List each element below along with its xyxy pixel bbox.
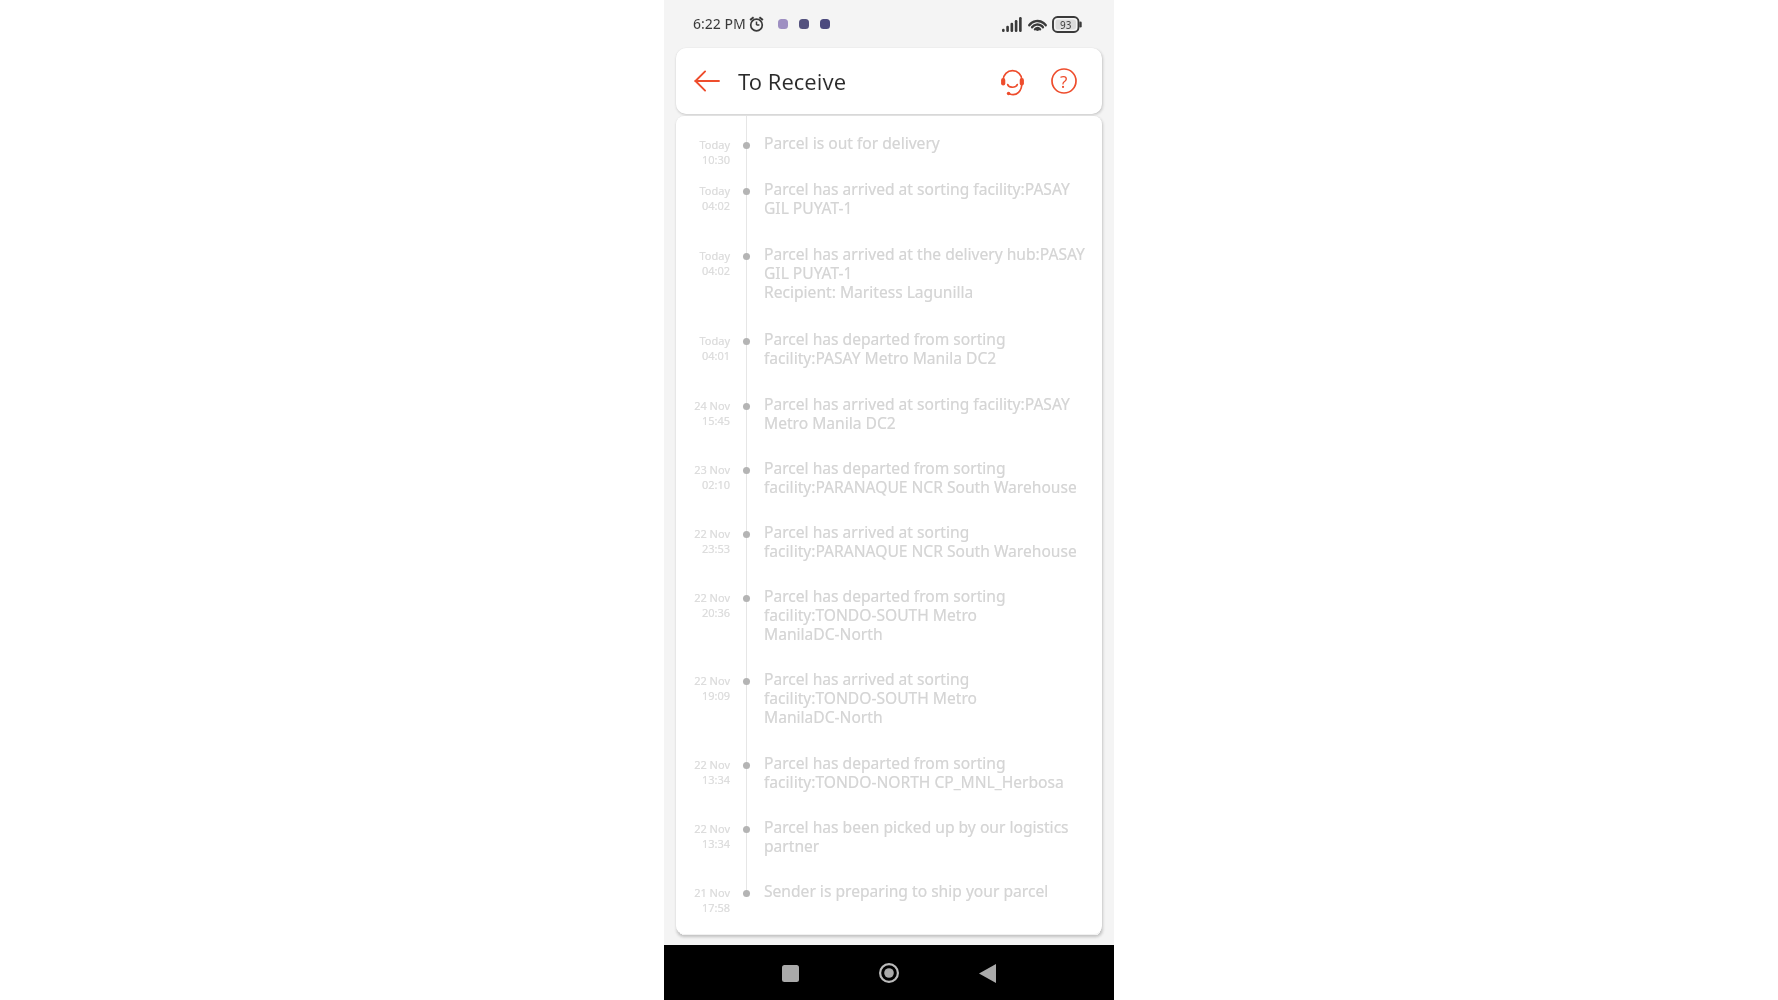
button[interactable]: Customer support [996, 65, 1028, 97]
button[interactable]: Back [965, 951, 1009, 995]
button[interactable]: 22 Nov [676, 673, 1102, 756]
button[interactable]: 23 Nov [676, 462, 1102, 526]
button[interactable]: Recents [768, 951, 812, 995]
staticText: 19:09 [701, 688, 730, 703]
button[interactable]: 24 Nov [676, 397, 1102, 462]
staticText: 04:02 [701, 263, 730, 278]
button[interactable]: 22 Nov [676, 821, 1102, 885]
staticText: Today [699, 183, 730, 198]
staticText: 13:34 [701, 772, 730, 787]
button[interactable]: 22 Nov [676, 590, 1102, 673]
staticText: 23:53 [701, 541, 730, 556]
staticText: 22 Nov [694, 526, 730, 541]
staticText: Parcel has arrived at sorting facility:P… [764, 180, 1070, 218]
staticText: 02:10 [701, 477, 730, 492]
button[interactable]: Help [1048, 65, 1080, 97]
staticText: 22 Nov [694, 821, 730, 836]
staticText: Parcel has arrived at the delivery hub:P… [764, 245, 1085, 302]
staticText: Parcel has departed from sorting facilit… [764, 587, 1006, 644]
staticText: Parcel has departed from sorting facilit… [764, 459, 1077, 497]
staticText: Today [699, 333, 730, 348]
staticText: Parcel has departed from sorting facilit… [764, 754, 1064, 792]
button[interactable]: Back [689, 63, 725, 99]
staticText: 24 Nov [694, 398, 730, 413]
staticText: 10:30 [701, 152, 730, 167]
button[interactable]: 21 Nov [676, 885, 1102, 930]
staticText: 20:36 [701, 605, 730, 620]
staticText: ? [1060, 70, 1068, 93]
staticText: 22 Nov [694, 590, 730, 605]
button[interactable]: Today [676, 247, 1102, 331]
staticText: 6:22 PM [693, 14, 746, 33]
staticText: 04:01 [701, 348, 730, 363]
button[interactable]: Today [676, 182, 1102, 247]
button[interactable]: 22 Nov [676, 756, 1102, 821]
staticText: Parcel is out for delivery [764, 134, 940, 153]
staticText: 04:02 [701, 198, 730, 213]
staticText: To Receive [738, 66, 847, 96]
staticText: Parcel has departed from sorting facilit… [764, 330, 1006, 368]
button[interactable]: Today [676, 137, 1102, 182]
button[interactable]: Today [676, 331, 1102, 397]
staticText: Today [699, 248, 730, 263]
staticText: Parcel has been picked up by our logisti… [764, 818, 1069, 856]
staticText: 15:45 [701, 413, 730, 428]
staticText: Sender is preparing to ship your parcel [764, 882, 1049, 901]
button[interactable]: 22 Nov [676, 526, 1102, 590]
staticText: Parcel has arrived at sorting facility:T… [764, 670, 977, 727]
staticText: 22 Nov [694, 673, 730, 688]
staticText: Parcel has arrived at sorting facility:P… [764, 523, 1077, 561]
staticText: 93 [1060, 18, 1072, 32]
staticText: 23 Nov [694, 462, 730, 477]
staticText: 17:58 [701, 900, 730, 915]
staticText: Today [699, 137, 730, 152]
staticText: 13:34 [701, 836, 730, 851]
staticText: 22 Nov [694, 757, 730, 772]
button[interactable]: Home [867, 951, 911, 995]
staticText: Parcel has arrived at sorting facility:P… [764, 395, 1070, 433]
staticText: 21 Nov [694, 885, 730, 900]
